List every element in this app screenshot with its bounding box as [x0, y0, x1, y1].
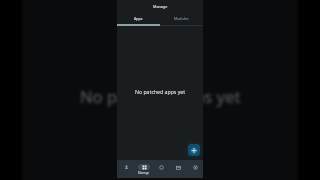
- button[interactable]: Settings: [186, 160, 203, 178]
- staticText: Manage: [138, 171, 150, 175]
- button[interactable]: Modules: [160, 13, 203, 24]
- staticText: Apps: [134, 16, 143, 21]
- staticText: No patched apps yet: [135, 88, 186, 95]
- staticText: Manage: [153, 4, 168, 9]
- staticText: Modules: [174, 16, 189, 21]
- button[interactable]: Install: [152, 160, 169, 178]
- staticText: No patched apps yet: [80, 84, 243, 106]
- button[interactable]: Store: [169, 160, 186, 178]
- button[interactable]: Add: [188, 144, 200, 156]
- button[interactable]: Manage: [135, 160, 152, 178]
- button[interactable]: Apps: [117, 13, 160, 24]
- button[interactable]: Superuser: [117, 160, 135, 178]
